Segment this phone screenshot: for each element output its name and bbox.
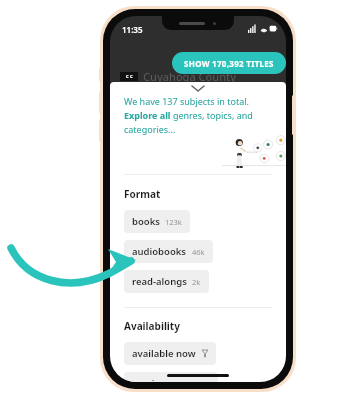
staticText: audiobooks (132, 245, 187, 258)
staticText: 46k (192, 247, 205, 257)
staticText: 11:35 (122, 24, 143, 35)
button[interactable]: read-alongs (124, 270, 209, 293)
staticText: 123k (165, 217, 182, 227)
staticText: We have 137 subjects in total. Explore a… (124, 95, 253, 136)
button[interactable]: coming soon (124, 372, 218, 382)
staticText: c c (126, 73, 133, 80)
staticText: SHOW 170,392 TITLES (184, 58, 274, 69)
staticText: coming soon (132, 377, 192, 382)
button[interactable]: books (124, 210, 190, 233)
staticText: 2k (192, 277, 201, 287)
staticText: books (132, 215, 160, 228)
staticText: Availability (124, 319, 180, 333)
staticText: Format (124, 187, 161, 201)
staticText: Cuyahoga County (143, 69, 237, 84)
staticText: read-alongs (132, 275, 187, 288)
staticText: available now (132, 347, 196, 360)
button[interactable]: available now (124, 342, 216, 365)
button[interactable]: SHOW 170,392 TITLES (172, 52, 286, 74)
button[interactable]: audiobooks (124, 240, 213, 263)
